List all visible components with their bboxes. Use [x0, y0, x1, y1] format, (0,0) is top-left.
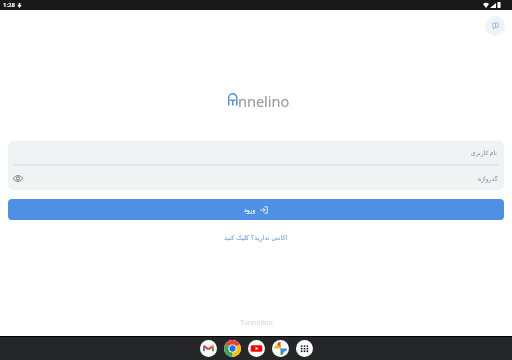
button[interactable]: All apps: [296, 340, 313, 357]
button[interactable]: Show password: [11, 171, 25, 185]
staticText: nnelino: [238, 91, 290, 111]
button[interactable]: نام کاربری: [8, 141, 504, 165]
staticText: 1:28: [3, 1, 15, 9]
button[interactable]: Gmail: [200, 340, 217, 357]
staticText: اکانتی ندارید؟ کلیک کنید: [224, 233, 288, 242]
staticText: گذرواژه: [478, 175, 498, 182]
button[interactable]: Chrome: [224, 340, 241, 357]
staticText: Tunnelino: [240, 318, 273, 328]
button[interactable]: ورود: [8, 199, 504, 220]
button[interactable]: Support chat: [485, 16, 505, 36]
button[interactable]: گذرواژه: [8, 166, 504, 190]
staticText: نام کاربری: [471, 149, 498, 157]
button[interactable]: YouTube: [248, 340, 265, 357]
button[interactable]: اکانتی ندارید؟ کلیک کنید: [218, 231, 294, 244]
button[interactable]: Photos: [272, 340, 289, 357]
staticText: ورود: [244, 206, 256, 213]
